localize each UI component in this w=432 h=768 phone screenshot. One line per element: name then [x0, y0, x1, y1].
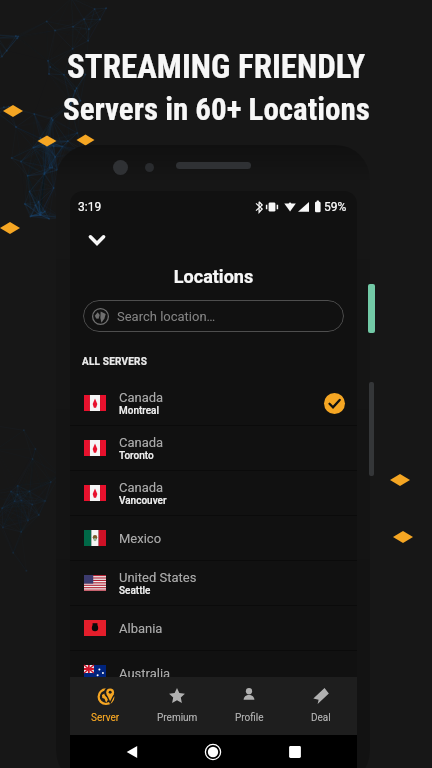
- staticText: Premium: [157, 712, 198, 724]
- staticText: STREAMING FRIENDLY: [67, 47, 366, 86]
- staticText: Locations: [70, 266, 357, 287]
- button[interactable]: Back: [119, 739, 145, 765]
- button[interactable]: Server: [70, 677, 141, 735]
- button[interactable]: United States: [70, 561, 357, 605]
- staticText: Seattle: [119, 585, 151, 597]
- button[interactable]: Deal: [285, 677, 357, 735]
- button[interactable]: Home: [200, 739, 226, 765]
- staticText: Australia: [119, 666, 171, 681]
- button[interactable]: Search location…: [83, 300, 344, 332]
- staticText: Canada: [119, 480, 164, 495]
- button[interactable]: Premium: [141, 677, 213, 735]
- button[interactable]: Mexico: [70, 516, 357, 560]
- staticText: Servers in 60+ Locations: [63, 91, 370, 127]
- staticText: Canada: [119, 390, 164, 405]
- staticText: ALL SERVERS: [82, 356, 148, 368]
- staticText: Search location…: [117, 309, 216, 324]
- button[interactable]: Collapse: [84, 227, 110, 253]
- button[interactable]: Australia: [70, 651, 357, 695]
- staticText: 3:19: [78, 200, 102, 214]
- button[interactable]: Recents: [282, 739, 308, 765]
- button[interactable]: Albania: [70, 606, 357, 650]
- staticText: 59%: [324, 200, 347, 214]
- staticText: Vancouver: [119, 495, 167, 507]
- staticText: Albania: [119, 621, 163, 636]
- staticText: Deal: [311, 712, 331, 724]
- button[interactable]: Canada: [70, 471, 357, 515]
- staticText: Toronto: [119, 450, 154, 462]
- button[interactable]: Profile: [213, 677, 285, 735]
- staticText: Server: [91, 712, 120, 724]
- button[interactable]: Canada: [70, 426, 357, 470]
- staticText: United States: [119, 570, 197, 585]
- button[interactable]: Canada: [70, 381, 357, 425]
- staticText: Canada: [119, 435, 164, 450]
- staticText: Profile: [235, 712, 264, 724]
- staticText: Montreal: [119, 405, 160, 417]
- staticText: Mexico: [119, 531, 162, 546]
